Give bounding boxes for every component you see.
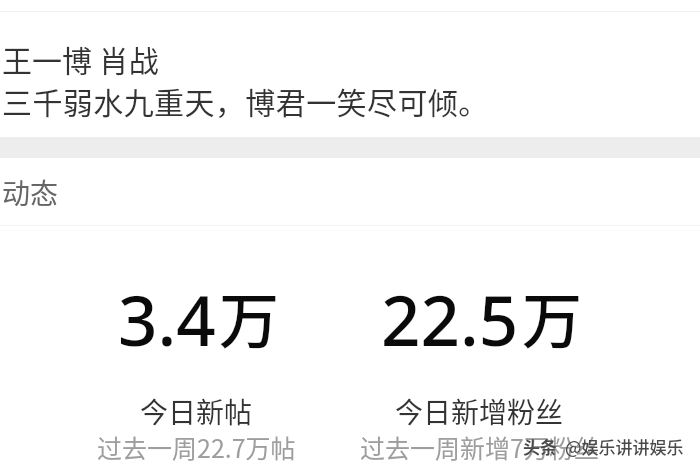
staticText: 过去一周新增7万粉丝 [360,429,599,465]
button[interactable]: 22.5 [338,272,621,468]
button[interactable]: 动态 [0,158,700,226]
staticText: 万 [522,273,582,360]
staticText: 头条 [523,434,557,459]
other: 头条 @娱乐讲讲娱乐 [523,434,684,459]
staticText: @娱乐讲讲娱乐 [565,434,684,459]
staticText: 过去一周22.7万帖 [97,429,296,465]
button[interactable]: 王一博 肖战 [2,37,489,123]
staticText: 万 [219,273,279,360]
staticText: 王一博 肖战 [2,37,159,80]
button[interactable]: 3.4 [55,272,338,468]
staticText: 三千弱水九重天，博君一笑尽可倾。 [2,79,489,122]
staticText: 今日新增粉丝 [395,391,564,432]
staticText: 22.5 [381,272,519,366]
staticText: 3.4 [118,272,216,366]
staticText: 今日新帖 [140,391,253,432]
staticText: 动态 [2,172,59,213]
